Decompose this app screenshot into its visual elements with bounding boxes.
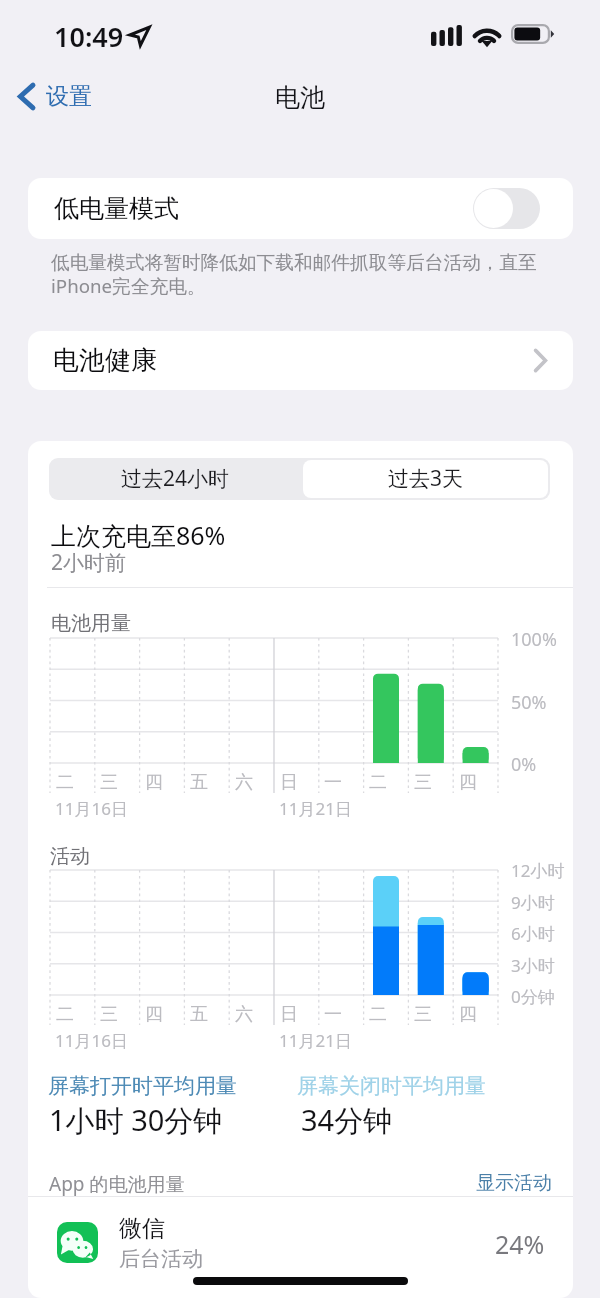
staticText: 一 bbox=[324, 1003, 342, 1026]
staticText: 11月16日 bbox=[55, 1029, 128, 1052]
staticText: 六 bbox=[235, 1003, 253, 1026]
staticText: 设置 bbox=[46, 82, 92, 111]
staticText: 日 bbox=[280, 771, 298, 794]
staticText: 三 bbox=[100, 771, 118, 794]
staticText: 屏幕关闭时平均用量 bbox=[297, 1073, 486, 1099]
staticText: 100% bbox=[511, 627, 557, 652]
staticText: 电池 bbox=[275, 82, 325, 113]
staticText: 12小时 bbox=[511, 859, 565, 882]
staticText: 四 bbox=[145, 771, 163, 794]
button[interactable]: 低电量模式 bbox=[28, 178, 573, 239]
staticText: 50% bbox=[511, 690, 547, 715]
button[interactable]: 电池健康 bbox=[28, 331, 573, 390]
staticText: 二 bbox=[369, 1003, 387, 1026]
staticText: App 的电池用量 bbox=[49, 1171, 185, 1197]
staticText: 微信 bbox=[119, 1214, 165, 1243]
staticText: 显示活动 bbox=[476, 1171, 552, 1195]
button[interactable]: 显示活动 bbox=[472, 1167, 556, 1199]
staticText: 后台活动 bbox=[119, 1246, 203, 1272]
staticText: 11月16日 bbox=[55, 797, 128, 820]
staticText: 过去24小时 bbox=[121, 464, 230, 493]
staticText: 1小时 30分钟 bbox=[49, 1100, 223, 1140]
staticText: 屏幕打开时平均用量 bbox=[48, 1073, 237, 1099]
staticText: 11月21日 bbox=[279, 1029, 352, 1052]
staticText: 10:49 bbox=[54, 18, 124, 55]
staticText: 五 bbox=[190, 771, 208, 794]
staticText: 二 bbox=[56, 771, 74, 794]
button[interactable]: 微信 bbox=[28, 1197, 573, 1281]
staticText: 上次充电至86% bbox=[51, 518, 226, 552]
staticText: 活动 bbox=[50, 844, 90, 869]
staticText: 低电量模式 bbox=[54, 193, 179, 224]
staticText: 电池用量 bbox=[51, 611, 131, 636]
staticText: 34分钟 bbox=[301, 1100, 393, 1140]
button[interactable]: 过去3天 bbox=[303, 460, 548, 498]
staticText: 电池健康 bbox=[53, 344, 157, 377]
staticText: 一 bbox=[324, 771, 342, 794]
staticText: 0% bbox=[511, 752, 537, 777]
staticText: 三 bbox=[414, 1003, 432, 1026]
staticText: 11月21日 bbox=[279, 797, 352, 820]
staticText: 9小时 bbox=[511, 891, 555, 914]
staticText: 三 bbox=[414, 771, 432, 794]
staticText: 24% bbox=[495, 1227, 545, 1261]
staticText: 五 bbox=[190, 1003, 208, 1026]
staticText: 四 bbox=[459, 771, 477, 794]
staticText: 三 bbox=[100, 1003, 118, 1026]
staticText: 四 bbox=[145, 1003, 163, 1026]
staticText: 六 bbox=[235, 771, 253, 794]
button[interactable]: 设置 bbox=[12, 76, 98, 117]
staticText: 二 bbox=[369, 771, 387, 794]
staticText: 日 bbox=[280, 1003, 298, 1026]
staticText: 二 bbox=[56, 1003, 74, 1026]
staticText: 3小时 bbox=[511, 954, 555, 977]
staticText: 2小时前 bbox=[51, 548, 127, 577]
staticText: 低电量模式将暂时降低如下载和邮件抓取等后台活动，直至 iPhone完全充电。 bbox=[51, 251, 537, 299]
staticText: 过去3天 bbox=[388, 464, 464, 493]
staticText: 0分钟 bbox=[511, 985, 555, 1008]
button[interactable]: 低电量模式开关 bbox=[473, 188, 540, 229]
button[interactable]: 过去24小时 bbox=[49, 458, 301, 500]
staticText: 四 bbox=[459, 1003, 477, 1026]
staticText: 6小时 bbox=[511, 922, 555, 945]
